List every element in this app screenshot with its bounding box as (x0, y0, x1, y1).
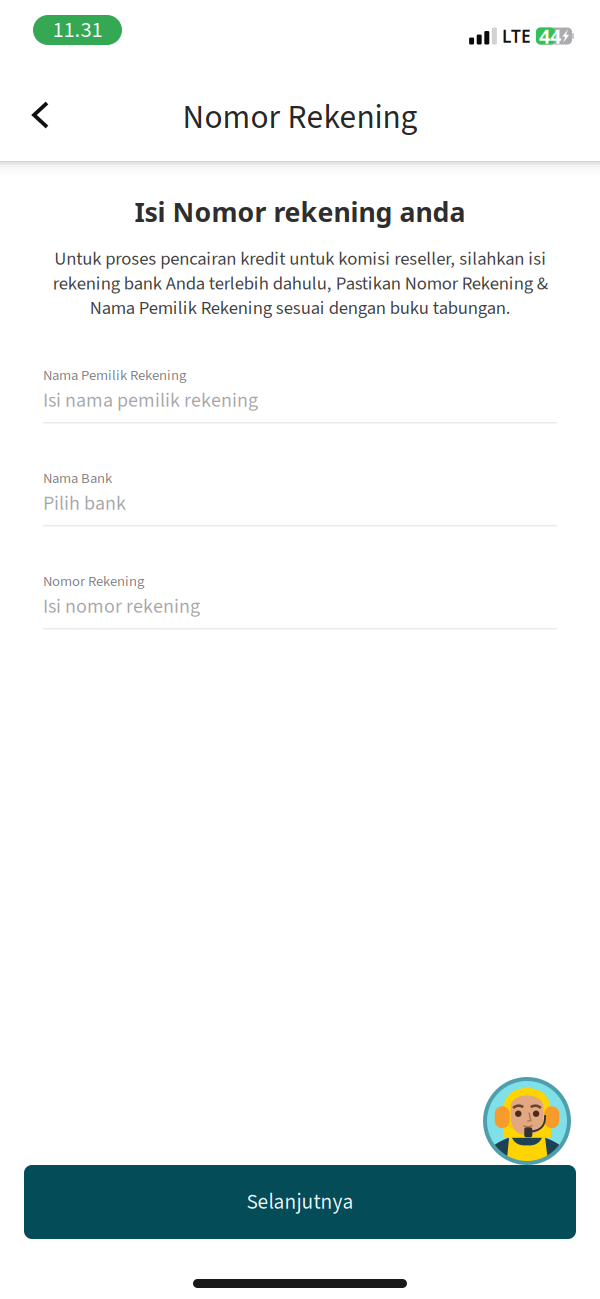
staticText: Pilih bank (43, 489, 126, 518)
staticText: 44 (539, 22, 561, 50)
staticText: Isi nama pemilik rekening (43, 386, 258, 415)
staticText: Selanjutnya (246, 1187, 353, 1217)
staticText: Nama Pemilik Rekening (43, 365, 186, 386)
staticText: Isi Nomor rekening anda (134, 193, 465, 230)
staticText: Nomor Rekening (43, 571, 144, 592)
staticText: Untuk proses pencairan kredit untuk komi… (52, 246, 547, 321)
button[interactable]: Selanjutnya (24, 1165, 576, 1239)
button[interactable]: Nama Bank (43, 470, 557, 526)
staticText: LTE (502, 24, 531, 48)
staticText: Isi nomor rekening (43, 592, 200, 621)
staticText: Nama Bank (43, 468, 112, 489)
button[interactable]: Nama Pemilik Rekening (43, 367, 557, 423)
button[interactable]: Customer support (483, 1077, 571, 1165)
button[interactable]: Back (18, 79, 63, 144)
button[interactable]: Nomor Rekening (43, 573, 557, 629)
staticText: 11.31 (52, 14, 102, 46)
staticText: Nomor Rekening (182, 94, 417, 141)
